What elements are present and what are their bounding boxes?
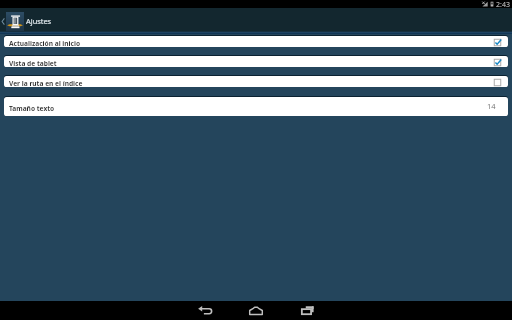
button[interactable]: Home xyxy=(242,301,270,320)
button[interactable]: Navigate up xyxy=(0,8,24,34)
button[interactable]: Tamaño texto xyxy=(4,96,508,116)
staticText: Actualización al inicio xyxy=(9,39,81,48)
staticText: Vista de tablet xyxy=(9,59,57,68)
staticText: 14 xyxy=(487,101,496,111)
button[interactable]: Vista de tablet xyxy=(4,55,508,67)
staticText: 2:43 xyxy=(496,0,510,8)
button[interactable]: Actualización al inicio xyxy=(4,35,508,47)
button[interactable]: Recents xyxy=(294,301,322,320)
button[interactable]: Ver la ruta en el índice xyxy=(4,75,508,87)
staticText: Ver la ruta en el índice xyxy=(9,79,83,88)
staticText: Ajustes xyxy=(26,16,52,26)
button[interactable]: Back xyxy=(191,301,219,320)
staticText: Tamaño texto xyxy=(9,104,55,113)
